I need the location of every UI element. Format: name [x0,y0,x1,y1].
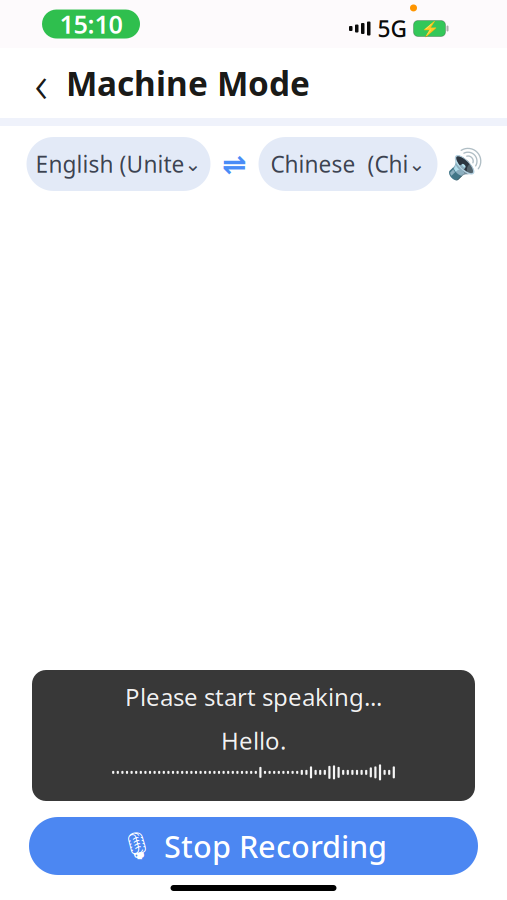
staticText: 🎙 [120,831,154,861]
button[interactable]: Back [28,60,54,106]
button[interactable]: 🎙 [29,817,478,875]
staticText: Machine Mode [66,61,310,105]
staticText: Please start speaking... [125,681,382,712]
staticText: ⇌ [222,147,247,181]
staticText: 5G [377,13,406,43]
button[interactable]: Play audio [445,142,485,186]
button[interactable]: Chinese (Chi [258,137,437,191]
button[interactable]: Swap languages [210,142,258,186]
staticText: ⌄ [408,153,425,175]
staticText: Chinese (Chi [270,149,408,179]
staticText: Hello. [221,724,286,756]
staticText: ⚡ [420,20,438,37]
staticText: 15:10 [59,7,122,41]
staticText: Stop Recording [164,826,387,866]
staticText: ‹ [34,49,47,117]
button[interactable]: English (Unite [26,137,210,191]
staticText: English (Unite [35,149,184,179]
staticText: 🔊 [447,147,484,181]
staticText: ⌄ [184,153,201,175]
